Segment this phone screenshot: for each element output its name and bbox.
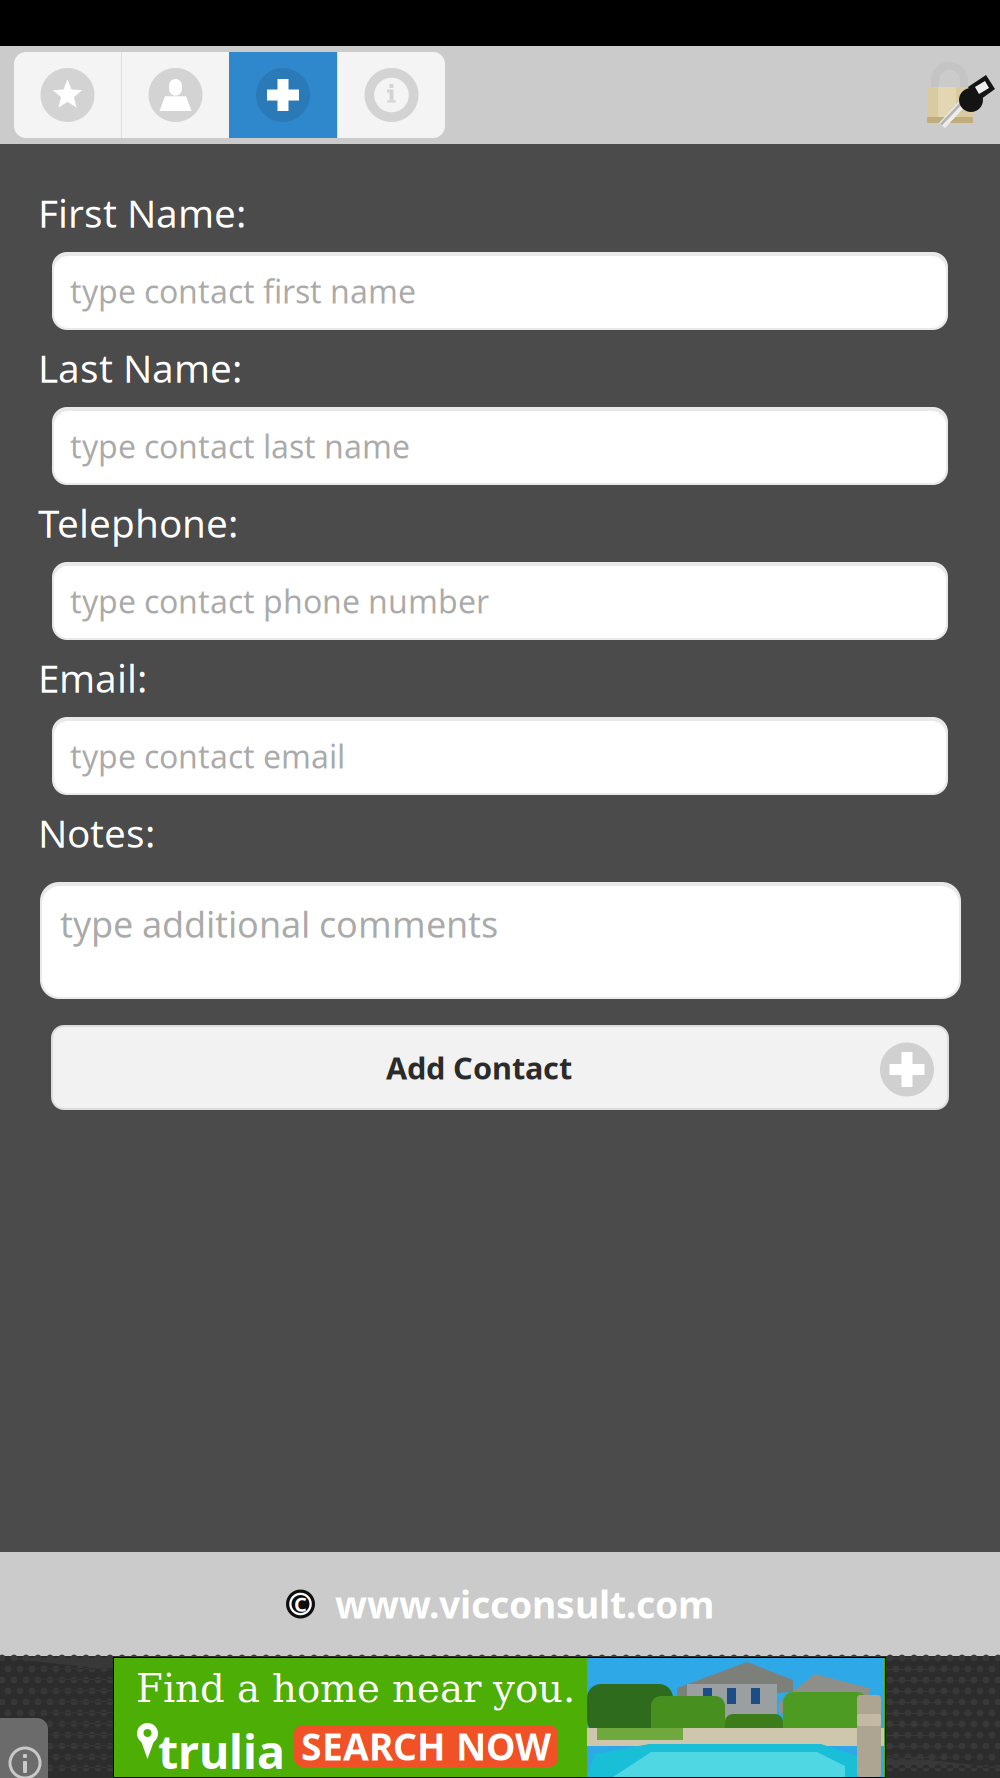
button[interactable]: type additional comments <box>40 882 961 999</box>
button[interactable]: About this ad <box>0 1718 48 1778</box>
staticText: www.vicconsult.com <box>315 1579 714 1629</box>
button[interactable]: type contact first name <box>52 252 948 330</box>
staticText: type contact last name <box>70 425 410 467</box>
button[interactable]: Contacts <box>122 52 229 138</box>
staticText: Email: <box>38 652 147 703</box>
button[interactable]: type contact email <box>52 717 948 795</box>
staticText: type contact first name <box>70 270 416 312</box>
button[interactable]: type contact last name <box>52 407 948 485</box>
button[interactable]: Security <box>914 53 998 137</box>
staticText: First Name: <box>38 187 246 238</box>
button[interactable]: Information <box>338 52 445 138</box>
button[interactable]: Add Contact <box>52 1026 948 1109</box>
staticText: Last Name: <box>38 342 242 393</box>
button[interactable]: Favourites <box>14 52 121 138</box>
staticText: Notes: <box>38 807 155 858</box>
staticText: Add Contact <box>386 1047 572 1088</box>
staticText: Telephone: <box>38 497 238 548</box>
staticText: type contact phone number <box>70 580 489 622</box>
staticText: C <box>294 1591 307 1617</box>
button[interactable]: Add contact <box>229 52 337 138</box>
staticText: SEARCH NOW <box>301 1721 551 1771</box>
staticText: type contact email <box>70 735 345 777</box>
staticText: trulia <box>158 1720 285 1778</box>
staticText: Find a home near you. <box>136 1666 575 1711</box>
button[interactable]: type contact phone number <box>52 562 948 640</box>
staticText: type additional comments <box>60 900 498 948</box>
